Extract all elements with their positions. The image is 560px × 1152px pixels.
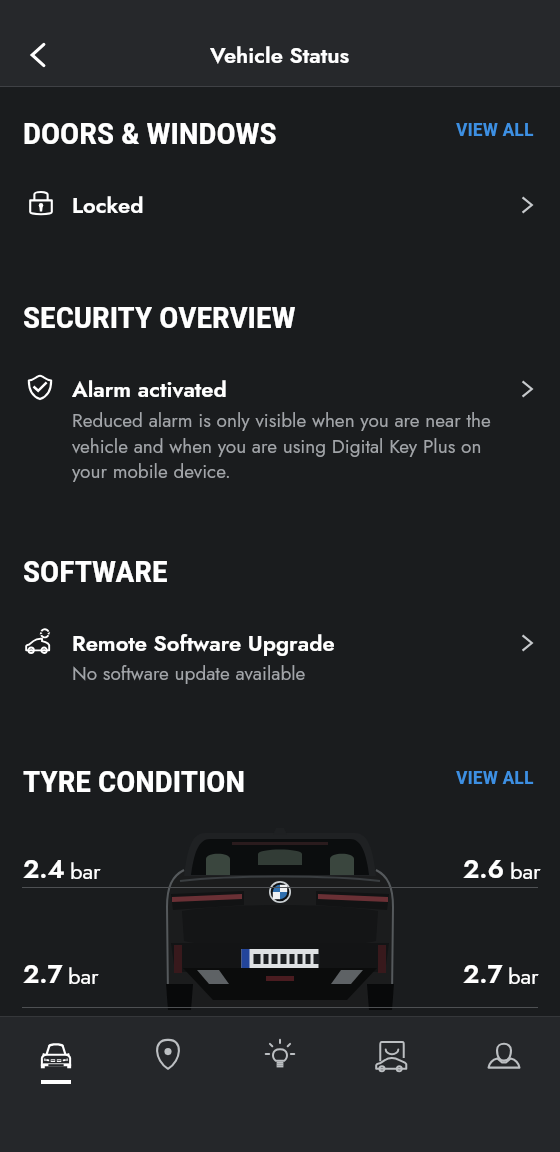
staticText: bar: [508, 960, 539, 992]
button[interactable]: Location: [112, 1016, 224, 1116]
staticText: Reduced alarm is only visible when you a…: [72, 407, 508, 485]
staticText: bar: [68, 960, 99, 992]
button[interactable]: Open: [505, 621, 549, 665]
button[interactable]: Back: [16, 33, 60, 77]
staticText: Locked: [72, 189, 144, 221]
staticText: Vehicle Status: [210, 39, 350, 71]
button[interactable]: Open: [505, 367, 549, 411]
staticText: 2.7: [463, 955, 503, 993]
button[interactable]: Lights: [224, 1016, 336, 1116]
staticText: Remote Software Upgrade: [72, 627, 335, 659]
button[interactable]: VIEW ALL: [446, 761, 544, 793]
button[interactable]: Shop: [336, 1016, 448, 1116]
staticText: TYRE CONDITION: [23, 764, 245, 799]
staticText: 2.7: [23, 955, 63, 993]
staticText: 2.4: [23, 850, 65, 888]
staticText: SECURITY OVERVIEW: [23, 300, 296, 335]
staticText: bar: [510, 855, 541, 887]
staticText: SOFTWARE: [23, 554, 168, 589]
staticText: Alarm activated: [72, 373, 227, 405]
staticText: DOORS & WINDOWS: [23, 116, 277, 151]
staticText: VIEW ALL: [456, 118, 534, 140]
staticText: 2.6: [463, 850, 505, 888]
staticText: bar: [70, 855, 101, 887]
button[interactable]: Profile: [448, 1016, 560, 1116]
button[interactable]: Open: [505, 183, 549, 227]
staticText: No software update available: [72, 660, 306, 687]
button[interactable]: Vehicle: [0, 1016, 112, 1116]
staticText: VIEW ALL: [456, 766, 534, 788]
button[interactable]: VIEW ALL: [446, 113, 544, 145]
